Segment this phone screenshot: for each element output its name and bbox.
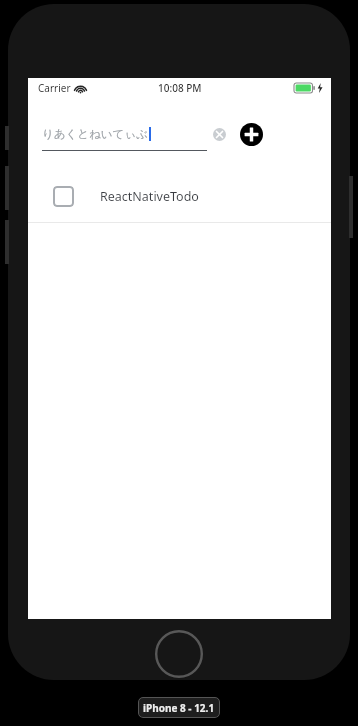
staticText: Carrier [38, 81, 71, 95]
other: Home [155, 630, 203, 678]
button[interactable]: りあくとねいてぃぶ [42, 117, 207, 151]
staticText: iPhone 8 - 12.1 [143, 701, 215, 715]
button[interactable]: Toggle complete [53, 186, 74, 207]
button[interactable]: Add todo [240, 123, 263, 146]
staticText: ReactNativeTodo [100, 188, 199, 205]
staticText: 10:08 PM [158, 81, 202, 95]
button[interactable]: Clear text [213, 128, 226, 141]
staticText: りあくとねいてぃぶ [42, 127, 148, 141]
button[interactable]: Toggle complete [28, 170, 331, 222]
